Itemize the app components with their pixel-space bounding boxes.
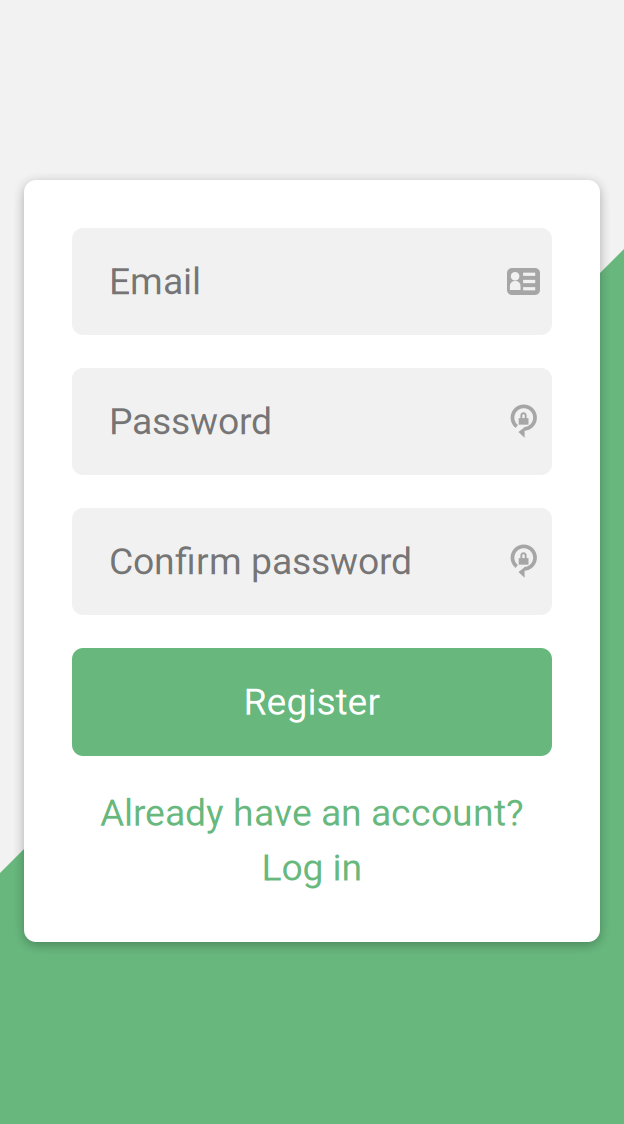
staticText: Already have an account? (100, 791, 524, 835)
staticText: Email (109, 260, 201, 303)
button[interactable]: Already have an account? (72, 791, 552, 889)
staticText: Register (243, 680, 380, 724)
staticText: Password (109, 400, 272, 443)
button[interactable]: Password (72, 368, 552, 475)
staticText: Log in (261, 846, 362, 889)
button[interactable]: Confirm password (72, 508, 552, 615)
button[interactable]: Email (72, 228, 552, 335)
staticText: Confirm password (109, 540, 412, 583)
button[interactable]: Register (72, 648, 552, 756)
